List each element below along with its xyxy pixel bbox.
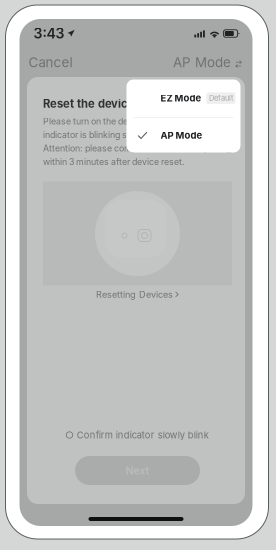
button[interactable]: AP Mode [126,118,240,153]
staticText: within 3 minutes after device reset. [43,156,185,167]
staticText: Confirm indicator slowly blink [77,429,209,441]
button[interactable]: Resetting Devices [43,285,232,303]
staticText: Attention: please complete the network p… [43,143,231,153]
staticText: AP Mode [173,54,231,70]
staticText: indicator is blinking slowly. [43,129,151,140]
staticText: Please turn on the device and confirm th… [43,116,213,127]
staticText: EZ Mode [160,92,201,104]
button[interactable]: Confirm indicator slowly blink [43,428,232,442]
staticText: AP Mode [160,130,202,141]
staticText: Next [125,464,149,477]
staticText: Reset the device [43,97,135,111]
staticText: Resetting Devices [96,289,173,300]
staticText: 3:43 [33,25,64,42]
staticText: Cancel [28,54,72,70]
button[interactable]: EZ Mode [126,79,240,117]
button[interactable]: AP Mode [164,49,245,75]
button[interactable]: Cancel [27,49,81,75]
button[interactable]: Next [75,456,200,485]
staticText: Default [209,94,233,103]
